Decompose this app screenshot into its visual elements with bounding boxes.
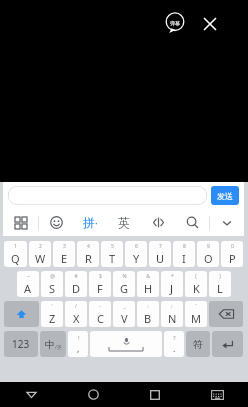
button[interactable]: Close <box>200 14 220 34</box>
button[interactable]: 7 <box>149 241 171 267</box>
staticText: ( <box>195 273 197 280</box>
button[interactable] <box>8 186 207 205</box>
button[interactable]: & <box>137 271 159 297</box>
staticText: O <box>204 251 213 266</box>
staticText: X <box>73 311 80 326</box>
staticText: 拼 <box>83 215 95 230</box>
button[interactable]: 8 <box>173 241 195 267</box>
button[interactable]: ! <box>68 331 88 357</box>
button[interactable]: - <box>89 301 111 327</box>
button[interactable]: Handwriting <box>141 209 175 236</box>
staticText: Y <box>133 251 140 266</box>
staticText: V <box>121 311 128 326</box>
staticText: & <box>146 273 150 280</box>
staticText: * <box>171 273 174 280</box>
staticText: 9 <box>207 243 210 250</box>
button[interactable]: Backspace <box>209 301 243 327</box>
staticText: R <box>85 251 92 266</box>
staticText: U <box>156 251 165 266</box>
staticText: # <box>74 273 78 280</box>
button[interactable]: / <box>65 301 87 327</box>
staticText: 123 <box>12 337 30 351</box>
button[interactable]: ( <box>185 271 207 297</box>
button[interactable]: _ <box>113 301 135 327</box>
button[interactable]: $ <box>89 271 111 297</box>
button[interactable]: Emoji <box>39 209 73 236</box>
staticText: T <box>109 251 116 266</box>
staticText: , <box>77 342 80 354</box>
button[interactable]: ~ <box>17 271 39 297</box>
button[interactable]: 中 <box>40 331 66 357</box>
staticText: M <box>191 311 201 326</box>
staticText: 弹幕 <box>170 20 180 26</box>
button[interactable]: * <box>161 271 183 297</box>
button[interactable]: # <box>65 271 87 297</box>
staticText: / <box>75 303 77 310</box>
staticText: D <box>72 281 81 296</box>
button[interactable]: Enter <box>212 331 243 357</box>
button[interactable]: 发送 <box>211 186 239 205</box>
staticText: 符 <box>193 338 203 351</box>
staticText: Z <box>49 311 56 326</box>
staticText: 英 <box>118 215 130 230</box>
staticText: 2 <box>39 243 42 250</box>
button[interactable]: Home <box>62 382 124 407</box>
button[interactable]: Search <box>175 209 209 236</box>
button[interactable]: ; <box>161 301 183 327</box>
button[interactable]: Recents <box>124 382 186 407</box>
staticText: 4 <box>87 243 90 250</box>
staticText: L <box>217 281 223 296</box>
button[interactable]: Space <box>90 331 162 357</box>
button[interactable]: 6 <box>125 241 147 267</box>
staticText: 7 <box>159 243 162 250</box>
staticText: ) <box>219 273 221 280</box>
button[interactable]: 2 <box>29 241 51 267</box>
staticText: _ <box>123 303 126 310</box>
button[interactable]: : <box>137 301 159 327</box>
staticText: K <box>193 281 200 296</box>
staticText: 8 <box>183 243 186 250</box>
staticText: A <box>24 281 32 296</box>
staticText: ? <box>173 334 176 342</box>
staticText: /英 <box>55 344 62 351</box>
staticText: 发送 <box>217 191 233 201</box>
staticText: @ <box>50 273 55 280</box>
staticText: ; <box>171 303 173 310</box>
button[interactable]: 123 <box>4 331 38 357</box>
button[interactable]: 0 <box>221 241 243 267</box>
staticText: $ <box>99 273 102 280</box>
staticText: J <box>170 281 174 296</box>
button[interactable]: 3 <box>53 241 75 267</box>
staticText: N <box>168 311 177 326</box>
button[interactable]: @ <box>41 271 63 297</box>
staticText: G <box>120 281 129 296</box>
staticText: E <box>61 251 68 266</box>
button[interactable]: ? <box>164 331 184 357</box>
staticText: H <box>144 281 153 296</box>
staticText: · <box>95 216 98 230</box>
staticText: : <box>147 303 149 310</box>
button[interactable]: Back <box>0 382 62 407</box>
button[interactable]: Keyboard layouts <box>3 209 38 236</box>
staticText: Q <box>11 251 20 266</box>
button[interactable]: Switch keyboard <box>186 382 248 407</box>
button[interactable]: 4 <box>77 241 99 267</box>
button[interactable]: ' <box>41 301 63 327</box>
button[interactable]: 英文 <box>107 209 141 236</box>
staticText: 5 <box>111 243 114 250</box>
button[interactable]: 弹幕 <box>164 12 186 34</box>
button[interactable]: % <box>113 271 135 297</box>
button[interactable]: 符 <box>186 331 210 357</box>
button[interactable]: 拼音 <box>73 209 107 236</box>
button[interactable]: Shift <box>4 301 39 327</box>
button[interactable]: 5 <box>101 241 123 267</box>
staticText: ` <box>195 303 197 310</box>
button[interactable]: 1 <box>4 241 27 267</box>
button[interactable]: 9 <box>197 241 219 267</box>
staticText: W <box>35 251 46 266</box>
button[interactable]: ` <box>185 301 207 327</box>
staticText: C <box>97 311 104 326</box>
button[interactable]: Hide keyboard <box>210 209 244 236</box>
button[interactable]: ) <box>209 271 231 297</box>
staticText: - <box>99 303 101 310</box>
